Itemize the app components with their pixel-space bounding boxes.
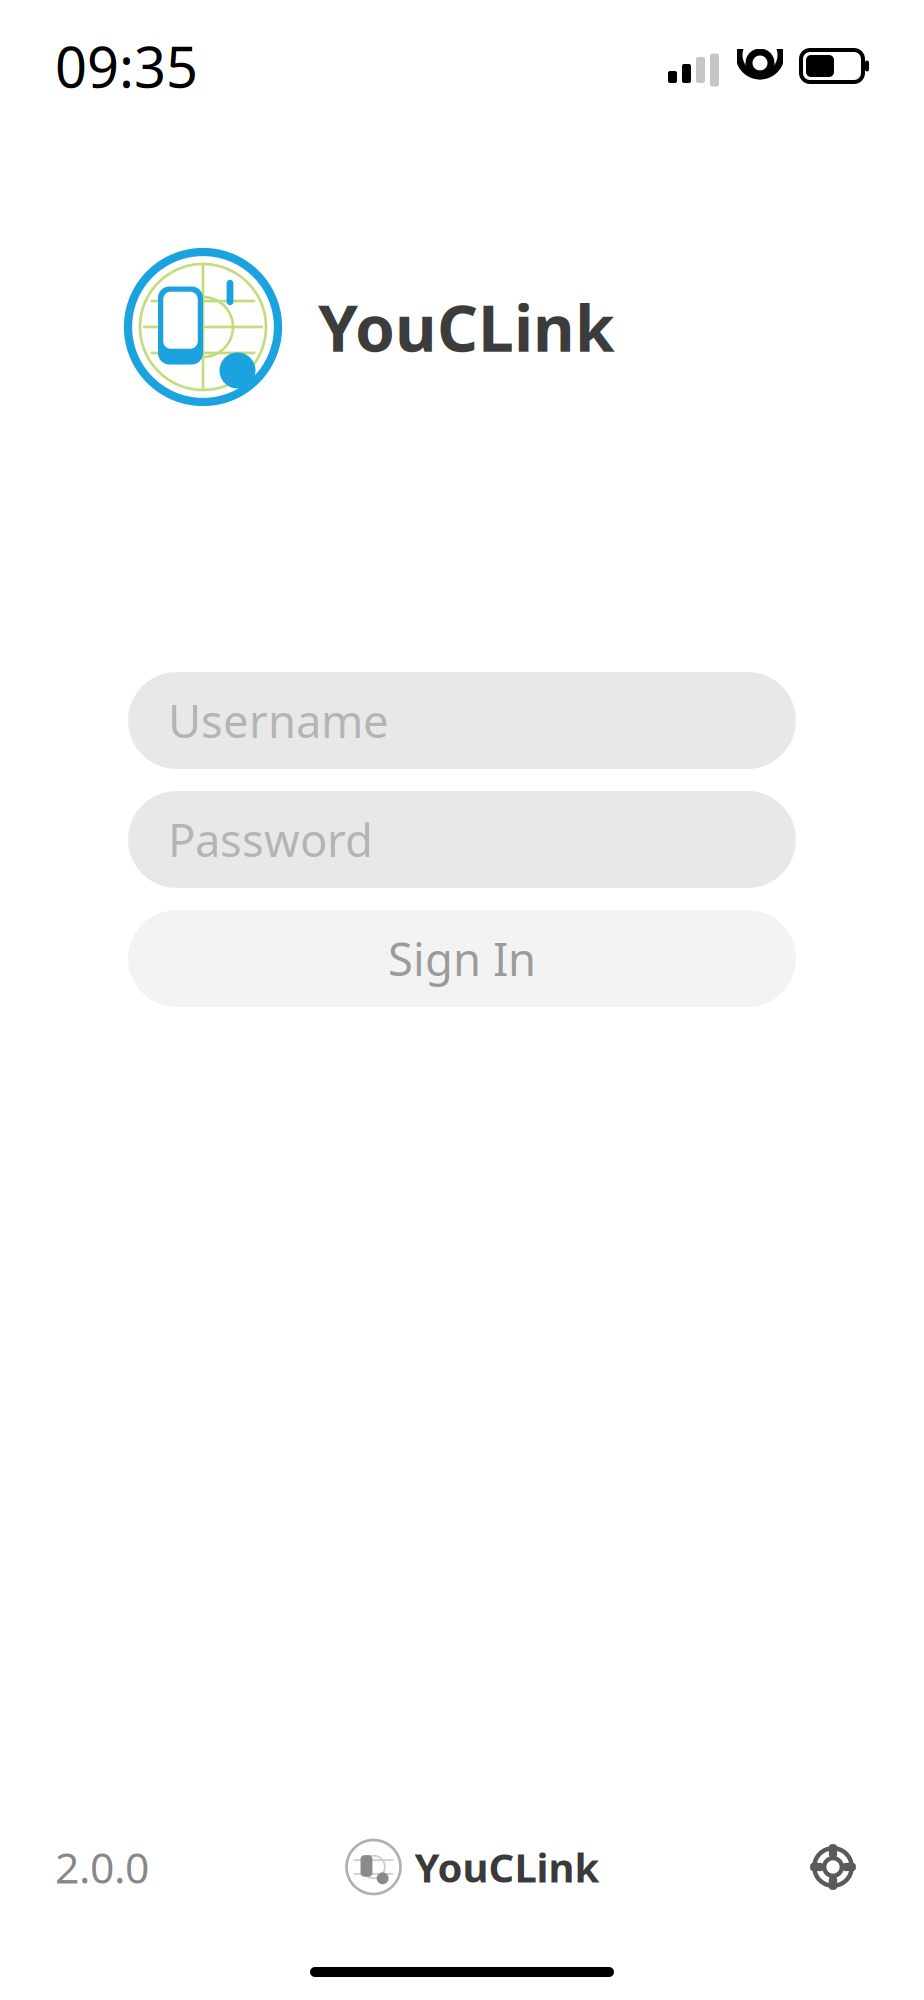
- button[interactable]: Password: [128, 791, 796, 888]
- staticText: Username: [168, 690, 389, 751]
- staticText: 2.0.0: [55, 1839, 149, 1895]
- staticText: YouCLink: [318, 284, 615, 369]
- button[interactable]: Sign In: [128, 910, 796, 1007]
- button[interactable]: Username: [128, 672, 796, 769]
- staticText: Sign In: [388, 928, 536, 989]
- staticText: YouCLink: [414, 1840, 599, 1893]
- staticText: Password: [168, 809, 373, 870]
- staticText: 09:35: [55, 29, 198, 103]
- button[interactable]: Settings: [797, 1831, 869, 1903]
